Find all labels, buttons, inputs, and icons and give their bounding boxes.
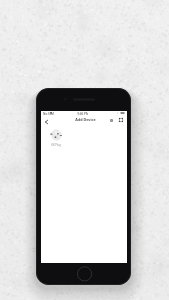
staticText: UK Plug: [51, 143, 61, 147]
staticText: No SIM: [43, 112, 54, 116]
button[interactable]: Settings: [107, 116, 115, 124]
button[interactable]: Back: [42, 117, 50, 126]
staticText: Add Device: [75, 117, 96, 122]
button[interactable]: UK Plug: [48, 129, 64, 147]
button[interactable]: Scan QR code: [117, 116, 125, 124]
staticText: 9:46 PM: [77, 112, 88, 116]
